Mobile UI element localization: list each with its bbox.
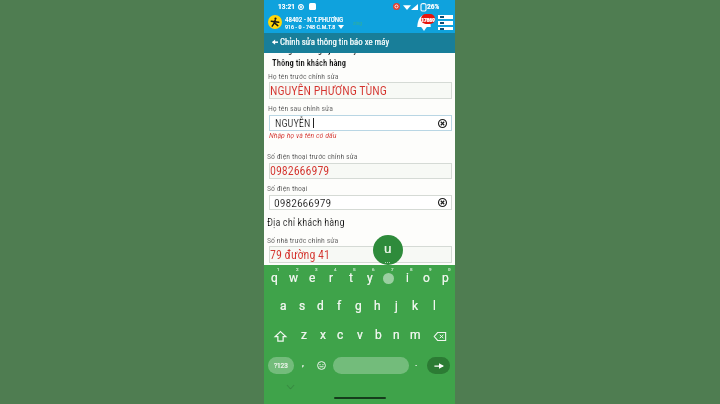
staticText: j (395, 299, 398, 313)
button[interactable]: Shift (268, 325, 292, 347)
button[interactable]: NGUYỄN PHƯƠNG TÙNG (269, 82, 452, 99)
staticText: Địa chỉ khách hàng (267, 216, 345, 228)
staticText: 9 (429, 267, 432, 272)
staticText: 6 (372, 267, 375, 272)
button[interactable]: a (274, 295, 293, 317)
button[interactable]: i (398, 267, 417, 289)
staticText: 1 (277, 267, 280, 272)
button[interactable]: . (410, 356, 422, 374)
staticText: 26% (427, 2, 440, 11)
staticText: k (412, 299, 419, 313)
button[interactable]: Enter (427, 357, 450, 374)
staticText: Thông tin đăng ký xe máy trước khi sửa (271, 45, 404, 55)
staticText: 5 (353, 267, 356, 272)
staticText: 8 (410, 267, 413, 272)
staticText: o (423, 271, 430, 285)
staticText: Họ tên trước chỉnh sửa (268, 72, 339, 81)
staticText: d (317, 299, 324, 313)
button[interactable]: b (369, 324, 388, 346)
staticText: Thông tin khách hàng (272, 58, 347, 68)
button[interactable] (379, 267, 398, 289)
other: Back (272, 38, 278, 46)
button[interactable]: h (368, 295, 387, 317)
staticText: 916 - 0 - 748 C.M.T.8 (285, 23, 336, 30)
button[interactable]: 79 đường 41 (269, 246, 452, 263)
staticText: s (299, 299, 306, 313)
button[interactable]: m (406, 324, 425, 346)
button[interactable]: q (265, 267, 284, 289)
button[interactable]: Backspace (428, 325, 452, 347)
button[interactable]: Emoji (313, 356, 329, 374)
button[interactable]: p (436, 267, 455, 289)
staticText: Số nhà trước chỉnh sửa (267, 236, 339, 245)
staticText: , (302, 358, 304, 369)
staticText: 79 đường 41 (270, 248, 330, 262)
button[interactable]: n (387, 324, 406, 346)
staticText: h (374, 299, 381, 313)
staticText: 3 (315, 267, 318, 272)
staticText: 17869 (421, 16, 435, 23)
staticText: n (393, 328, 400, 342)
staticText: 0982666979 (270, 164, 330, 178)
staticText: NGUYỄN (275, 117, 313, 129)
staticText: f (337, 299, 342, 313)
button[interactable]: z (294, 324, 313, 346)
button[interactable]: w (284, 267, 303, 289)
button[interactable]: c (331, 324, 350, 346)
button[interactable]: x (313, 324, 332, 346)
button[interactable]: l (425, 295, 444, 317)
staticText: x (320, 328, 326, 342)
staticText: Họ tên sau chỉnh sửa (268, 104, 334, 113)
button[interactable]: NGUYỄN (269, 115, 452, 131)
button[interactable]: Menu (438, 15, 453, 30)
staticText: 7 (391, 267, 394, 272)
button[interactable]: 0982666979 (269, 163, 452, 179)
button[interactable]: 0982666979 (269, 195, 452, 210)
staticText: Chỉnh sửa thông tin báo xe máy (280, 37, 390, 47)
staticText: v (357, 328, 363, 342)
button[interactable]: u (373, 235, 403, 265)
button[interactable]: e (303, 267, 322, 289)
staticText: 2 (296, 267, 299, 272)
button[interactable]: Back (264, 33, 455, 53)
button[interactable]: v (350, 324, 369, 346)
button[interactable]: g (349, 295, 368, 317)
staticText: Nhập họ và tên có dấu (269, 131, 337, 140)
other: Emoji (317, 361, 326, 370)
staticText: r (329, 271, 334, 285)
staticText: 13:21 (278, 2, 296, 11)
staticText: zing (353, 20, 363, 26)
button[interactable]: t (341, 267, 360, 289)
staticText: e (309, 271, 316, 285)
staticText: u (384, 240, 392, 256)
button[interactable]: ?123 (268, 357, 294, 374)
button[interactable]: Space (333, 357, 409, 374)
staticText: 0 (448, 267, 451, 272)
staticText: 0982666979 (274, 196, 332, 210)
button[interactable]: f (330, 295, 349, 317)
button[interactable]: s (293, 295, 312, 317)
staticText: m (410, 328, 421, 342)
staticText: y (367, 271, 373, 285)
button[interactable]: d (311, 295, 330, 317)
staticText: b (375, 328, 382, 342)
staticText: q (271, 271, 278, 285)
staticText: ?123 (274, 362, 288, 370)
staticText: z (301, 328, 307, 342)
staticText: NGUYỄN PHƯƠNG TÙNG (270, 84, 387, 98)
button[interactable]: r (322, 267, 341, 289)
staticText: . (415, 358, 418, 369)
button[interactable]: , (296, 356, 310, 374)
button[interactable]: j (387, 295, 406, 317)
button[interactable]: y (360, 267, 379, 289)
other: Backspace (434, 332, 446, 341)
button[interactable]: o (417, 267, 436, 289)
button[interactable]: k (406, 295, 425, 317)
staticText: 48402 - N.T.PHƯƠNG (285, 16, 344, 24)
staticText: Số điện thoại (267, 184, 308, 193)
staticText: c (337, 328, 344, 342)
staticText: a (280, 299, 287, 313)
staticText: g (355, 299, 362, 313)
button[interactable]: Notifications (417, 8, 431, 31)
staticText: i (406, 271, 409, 285)
